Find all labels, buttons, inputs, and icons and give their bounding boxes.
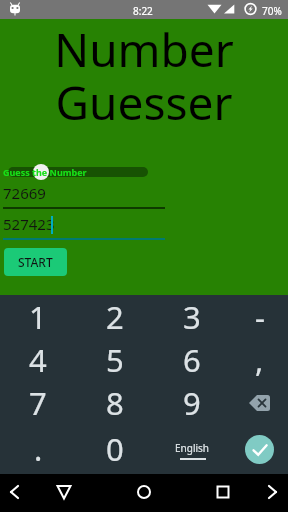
staticText: 3 bbox=[183, 296, 201, 338]
button[interactable]: - bbox=[231, 295, 288, 338]
button[interactable]: START bbox=[4, 248, 67, 276]
button[interactable]: 2 bbox=[76, 295, 153, 338]
staticText: 9 bbox=[183, 382, 201, 424]
staticText: Guesser bbox=[0, 71, 288, 134]
button[interactable]: Backspace bbox=[231, 381, 288, 424]
staticText: 5 bbox=[106, 339, 124, 381]
button[interactable]: Enter bbox=[231, 424, 288, 474]
button[interactable]: 9 bbox=[153, 381, 231, 424]
button[interactable]: 0 bbox=[76, 424, 153, 474]
staticText: , bbox=[255, 339, 264, 381]
staticText: START bbox=[18, 254, 53, 270]
staticText: 72669 bbox=[3, 183, 46, 203]
staticText: 70% bbox=[262, 4, 282, 18]
staticText: 527423 bbox=[3, 214, 55, 234]
button[interactable]: 8 bbox=[76, 381, 153, 424]
staticText: Guess the Number bbox=[3, 166, 87, 178]
button[interactable]: 4 bbox=[0, 338, 76, 381]
staticText: 7 bbox=[29, 382, 47, 424]
staticText: - bbox=[255, 296, 265, 338]
button[interactable]: . bbox=[0, 424, 76, 474]
staticText: 4 bbox=[29, 339, 47, 381]
staticText: Number bbox=[0, 18, 288, 81]
staticText: 8 bbox=[106, 382, 124, 424]
staticText: 6 bbox=[183, 339, 201, 381]
button[interactable]: 6 bbox=[153, 338, 231, 381]
staticText: English bbox=[175, 441, 210, 455]
button[interactable]: Guess slider bbox=[8, 167, 148, 177]
button[interactable]: 3 bbox=[153, 295, 231, 338]
button[interactable]: Language bbox=[153, 424, 231, 474]
button[interactable]: 1 bbox=[0, 295, 76, 338]
staticText: 8:22 bbox=[133, 4, 153, 18]
button[interactable]: 5 bbox=[76, 338, 153, 381]
staticText: 0 bbox=[106, 428, 124, 470]
staticText: 2 bbox=[106, 296, 124, 338]
button[interactable]: 7 bbox=[0, 381, 76, 424]
staticText: . bbox=[34, 428, 43, 470]
button[interactable]: , bbox=[231, 338, 288, 381]
staticText: 1 bbox=[29, 296, 47, 338]
